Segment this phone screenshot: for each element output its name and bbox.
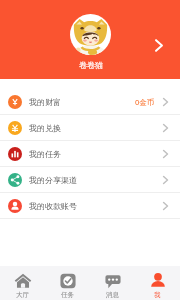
staticText: 任务 (61, 291, 74, 299)
staticText: 我 (154, 291, 161, 299)
other: Profile details (155, 39, 163, 52)
staticText: 0金币 (135, 97, 155, 107)
button[interactable]: 我的收款账号 (0, 193, 180, 218)
button[interactable]: 我 (135, 266, 180, 300)
button[interactable]: 任务 (45, 266, 90, 300)
staticText: 我的任务 (29, 149, 61, 159)
staticText: 我的收款账号 (29, 201, 77, 211)
staticText: 大厅 (16, 291, 29, 299)
staticText: 消息 (106, 291, 119, 299)
button[interactable]: 我的任务 (0, 141, 180, 166)
staticText: 卷卷猫 (79, 60, 103, 70)
button[interactable]: 我的财富 (0, 89, 180, 114)
button[interactable]: 消息 (90, 266, 135, 300)
button[interactable]: 我的分享渠道 (0, 167, 180, 192)
staticText: 我的财富 (29, 97, 61, 107)
button[interactable]: 大厅 (0, 266, 45, 300)
staticText: 我的兑换 (29, 123, 61, 133)
staticText: 我的分享渠道 (29, 175, 77, 185)
button[interactable]: 卷卷猫 (0, 0, 180, 79)
button[interactable]: 我的兑换 (0, 115, 180, 140)
